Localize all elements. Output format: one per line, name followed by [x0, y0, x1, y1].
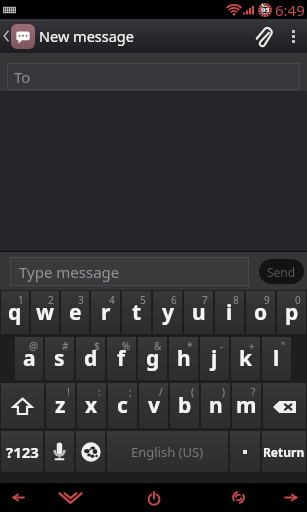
button[interactable]: v	[139, 383, 168, 428]
staticText: g	[146, 344, 160, 373]
staticText: y	[162, 298, 174, 327]
staticText: o	[254, 298, 268, 327]
staticText: %	[122, 339, 131, 353]
button[interactable]: d	[76, 337, 105, 380]
staticText: :	[98, 385, 101, 399]
staticText: New message	[39, 26, 134, 46]
button[interactable]: e	[61, 291, 89, 334]
staticText: /	[159, 385, 163, 399]
staticText: $	[94, 339, 100, 353]
button[interactable]: Power	[134, 483, 174, 512]
staticText: h	[177, 344, 191, 373]
staticText: Send	[267, 264, 296, 280]
staticText: *	[187, 339, 193, 353]
button[interactable]: n	[201, 383, 230, 428]
staticText: ;	[129, 385, 132, 399]
button[interactable]: k	[231, 337, 260, 380]
staticText: 4	[109, 293, 115, 307]
button[interactable]: Attach	[244, 19, 282, 53]
button[interactable]: x	[77, 383, 106, 428]
staticText: d	[84, 344, 98, 373]
staticText: 6:49	[275, 0, 305, 19]
staticText: p	[285, 298, 299, 327]
staticText: 5	[140, 293, 146, 307]
staticText: s	[54, 344, 65, 373]
button[interactable]: a	[15, 337, 43, 380]
staticText: "	[281, 339, 286, 353]
button[interactable]: Back	[0, 483, 38, 512]
button[interactable]: Symbols	[1, 431, 43, 472]
button[interactable]: b	[170, 383, 199, 428]
button[interactable]: u	[184, 291, 213, 334]
button[interactable]: Space	[107, 431, 228, 472]
staticText: w	[36, 298, 54, 327]
button[interactable]: f	[107, 337, 136, 380]
staticText: -	[220, 339, 224, 353]
button[interactable]: Home	[50, 483, 90, 512]
staticText: k	[239, 344, 253, 373]
button[interactable]: h	[169, 337, 198, 380]
staticText: 2	[48, 293, 54, 307]
staticText: b	[178, 391, 192, 420]
button[interactable]: m	[232, 383, 261, 428]
staticText: i	[226, 298, 233, 327]
button[interactable]: w	[31, 291, 59, 334]
staticText: r	[101, 298, 111, 327]
staticText: English (US)	[131, 443, 204, 461]
staticText: e	[69, 298, 82, 327]
staticText: l	[273, 344, 280, 373]
button[interactable]: p	[277, 291, 306, 334]
button[interactable]: t	[122, 291, 151, 334]
button[interactable]: Forward	[271, 483, 307, 512]
staticText: #	[62, 339, 69, 353]
button[interactable]: q	[1, 291, 29, 334]
button[interactable]: Period	[230, 431, 260, 472]
staticText: (	[191, 385, 194, 399]
button[interactable]: l	[262, 337, 291, 380]
staticText: z	[55, 391, 66, 420]
button[interactable]: Return	[262, 431, 306, 472]
button[interactable]: More options	[282, 19, 304, 53]
button[interactable]: r	[91, 291, 120, 334]
staticText: 6	[171, 293, 177, 307]
button[interactable]: Backspace	[263, 383, 306, 428]
button[interactable]: o	[246, 291, 275, 334]
button[interactable]: s	[45, 337, 74, 380]
staticText: 8	[233, 293, 239, 307]
staticText: x	[85, 391, 98, 420]
button[interactable]: Type message	[19, 257, 249, 286]
button[interactable]: z	[46, 383, 75, 428]
staticText: ?123	[6, 442, 39, 462]
button[interactable]: g	[138, 337, 167, 380]
button[interactable]: i	[215, 291, 244, 334]
staticText: v	[148, 391, 160, 420]
staticText: +	[249, 339, 255, 353]
button[interactable]: Send	[259, 259, 304, 284]
staticText: 9	[264, 293, 270, 307]
staticText: t	[132, 298, 142, 327]
button[interactable]: y	[153, 291, 182, 334]
staticText: 0	[295, 293, 301, 307]
staticText: &	[154, 339, 162, 353]
button[interactable]: c	[108, 383, 137, 428]
staticText: !	[67, 385, 70, 399]
staticText: Return	[263, 444, 305, 460]
staticText: 1	[18, 293, 24, 307]
staticText: j	[211, 344, 218, 373]
button[interactable]: j	[200, 337, 229, 380]
staticText: a	[23, 344, 36, 373]
staticText: ?	[251, 385, 256, 399]
button[interactable]: Rotate screen	[218, 483, 258, 512]
staticText: 95	[262, 6, 269, 14]
button[interactable]: Shift	[1, 383, 44, 428]
staticText: )	[222, 385, 225, 399]
staticText: f	[117, 344, 126, 373]
staticText: 3	[78, 293, 84, 307]
staticText: 7	[202, 293, 208, 307]
button[interactable]: Change language	[76, 431, 105, 472]
button[interactable]: To	[14, 63, 300, 90]
button[interactable]: Voice input	[45, 431, 74, 472]
staticText: c	[117, 391, 128, 420]
button[interactable]: Navigate up	[0, 19, 35, 53]
staticText: Type message	[19, 262, 120, 282]
